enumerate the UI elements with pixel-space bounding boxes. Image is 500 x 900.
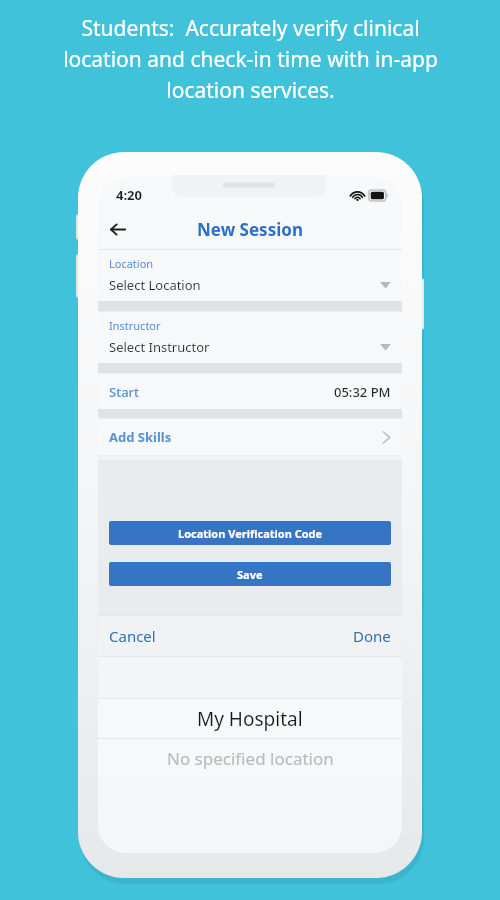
staticText: Cancel <box>109 626 156 646</box>
button[interactable]: Cancel <box>98 616 167 656</box>
button[interactable]: Instructor <box>98 312 402 363</box>
button[interactable]: Back <box>98 210 136 248</box>
staticText: No specified location <box>167 747 334 770</box>
staticText: Save <box>237 567 263 582</box>
button[interactable]: Save <box>109 562 391 586</box>
staticText: Instructor <box>109 318 161 333</box>
staticText: 05:32 PM <box>334 383 391 401</box>
button[interactable]: Done <box>342 616 402 656</box>
button[interactable]: Start <box>98 374 402 409</box>
staticText: Students: Accurately verify clinical loc… <box>63 14 438 104</box>
staticText: My Hospital <box>197 706 303 732</box>
button[interactable]: Location <box>98 250 402 301</box>
staticText: New Session <box>197 218 303 241</box>
staticText: Location Verification Code <box>178 526 323 541</box>
staticText: Select Instructor <box>109 338 210 356</box>
staticText: Location <box>109 256 154 271</box>
button[interactable]: Add Skills <box>98 419 402 455</box>
button[interactable]: Location Verification Code <box>109 521 391 545</box>
staticText: Done <box>353 626 391 646</box>
staticText: Select Location <box>109 276 201 294</box>
staticText: Add Skills <box>109 428 172 446</box>
staticText: Start <box>109 383 140 401</box>
staticText: 4:20 <box>116 186 142 204</box>
button[interactable]: My Hospital <box>98 699 402 738</box>
